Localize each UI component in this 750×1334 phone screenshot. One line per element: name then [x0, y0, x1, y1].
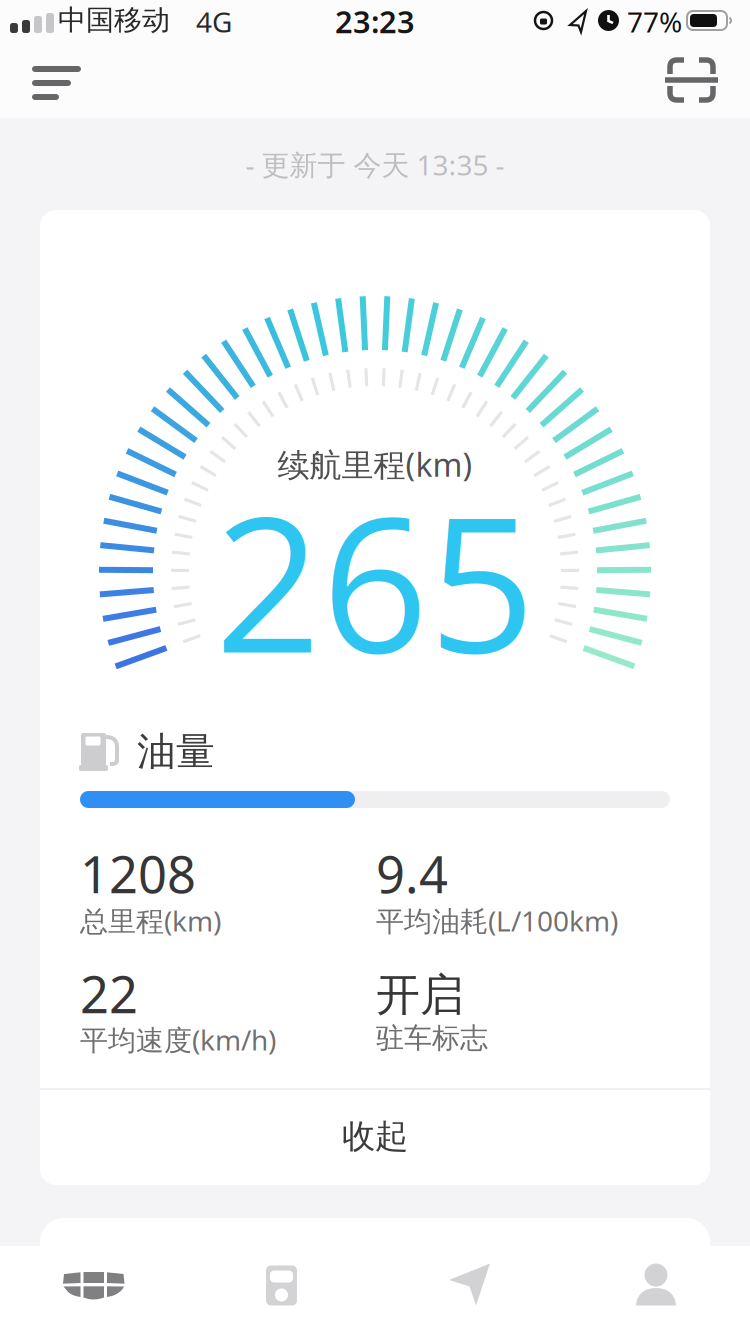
staticText: 总里程(km) — [80, 902, 221, 939]
staticText: 中国移动 — [58, 3, 170, 37]
staticText: 油量 — [137, 728, 215, 775]
staticText: 9.4 — [376, 840, 448, 907]
staticText: 驻车标志 — [376, 1021, 488, 1055]
staticText: 1208 — [80, 840, 196, 907]
staticText: 77% — [627, 3, 682, 40]
staticText: 265 — [214, 453, 535, 707]
staticText: 收起 — [342, 1116, 408, 1157]
staticText: 平均速度(km/h) — [80, 1021, 276, 1058]
staticText: 开启 — [376, 968, 464, 1022]
staticText: 4G — [196, 3, 232, 40]
staticText: - 更新于 今天 13:35 - — [245, 146, 504, 183]
staticText: 平均油耗(L/100km) — [376, 902, 618, 939]
staticText: 22 — [80, 960, 138, 1027]
staticText: 23:23 — [335, 1, 415, 42]
staticText: 续航里程(km) — [277, 443, 472, 485]
